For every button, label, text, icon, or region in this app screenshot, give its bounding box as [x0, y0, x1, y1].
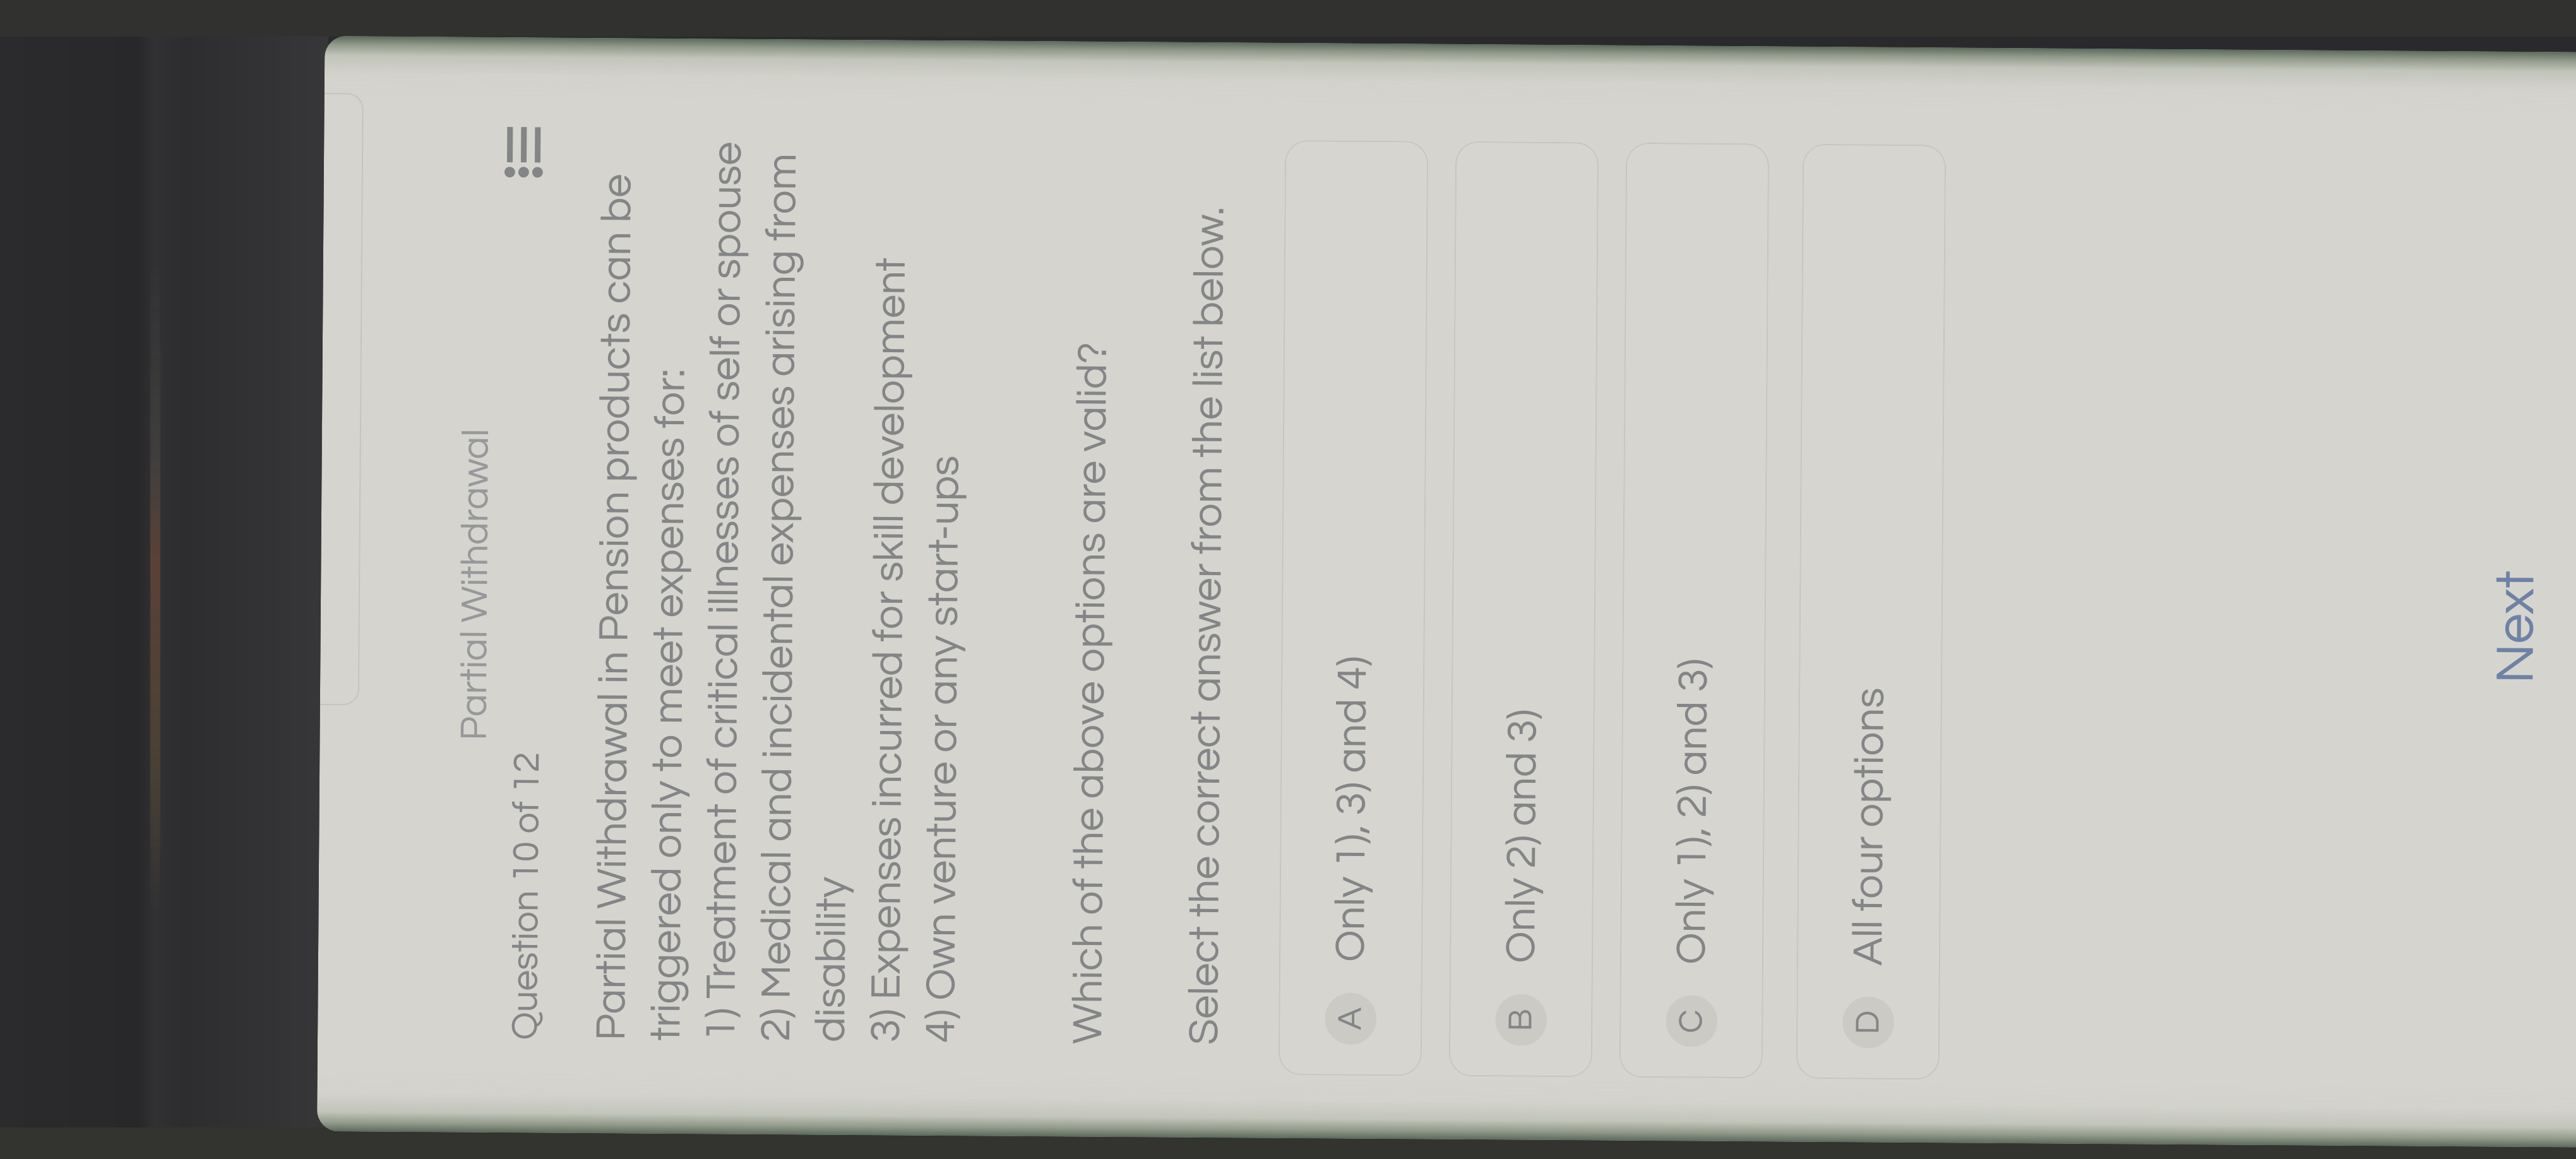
button[interactable]: Next — [2458, 488, 2574, 767]
staticText: C — [1674, 1009, 1709, 1033]
staticText: Which of the above options are valid? — [1066, 342, 1115, 1044]
staticText: Question 10 of 12 — [506, 752, 547, 1040]
staticText: Partial Withdrawal in Pension products c… — [590, 174, 639, 1041]
staticText: Select the correct answer from the list … — [1183, 206, 1232, 1045]
staticText: disability — [809, 877, 854, 1042]
staticText: Only 1), 2) and 3) — [1670, 658, 1716, 964]
button[interactable]: A — [1278, 140, 1428, 1076]
staticText: 1) Treatment of critical illnesses of se… — [700, 141, 750, 1042]
button[interactable]: B — [1449, 141, 1599, 1077]
staticText: Only 2) and 3) — [1500, 709, 1545, 963]
staticText: A — [1333, 1007, 1368, 1030]
staticText: 2) Medical and incidental expenses arisi… — [754, 153, 804, 1042]
staticText: All four options — [1847, 687, 1892, 966]
staticText: Next — [2488, 570, 2545, 684]
button[interactable]: C — [1619, 143, 1769, 1078]
staticText: triggered only to meet expenses for: — [645, 368, 693, 1041]
button[interactable]: D — [1796, 144, 1946, 1080]
staticText: B — [1503, 1008, 1539, 1031]
staticText: D — [1851, 1010, 1886, 1035]
staticText: 4) Own venture or any start-ups — [919, 455, 967, 1043]
staticText: Partial Withdrawal — [455, 428, 496, 740]
staticText: 3) Expenses incurred for skill developme… — [864, 257, 914, 1043]
button[interactable]: Question list — [480, 102, 569, 203]
staticText: Only 1), 3) and 4) — [1329, 656, 1375, 962]
